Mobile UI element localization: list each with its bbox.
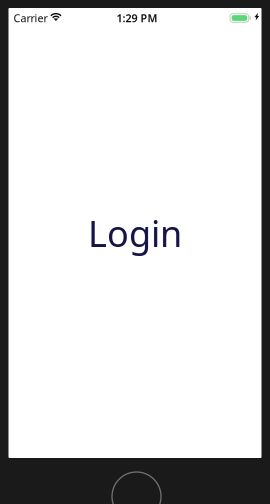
staticText: Carrier [13,11,47,25]
staticText: Login [88,209,182,257]
staticText: 1:29 PM [116,11,157,25]
